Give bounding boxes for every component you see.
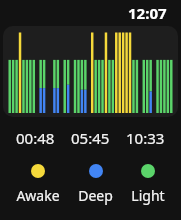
staticText: 00:48 bbox=[16, 128, 55, 148]
staticText: 05:45 bbox=[71, 128, 110, 148]
staticText: Awake bbox=[16, 186, 60, 205]
button[interactable]: Sleep stages chart bbox=[3, 26, 178, 117]
staticText: Deep bbox=[78, 186, 113, 205]
staticText: 10:33 bbox=[126, 128, 165, 148]
button[interactable]: Awake bbox=[14, 164, 62, 205]
button[interactable]: Deep bbox=[76, 164, 115, 205]
staticText: 12:07 bbox=[128, 3, 167, 23]
button[interactable]: Light bbox=[129, 164, 167, 205]
staticText: Light bbox=[131, 186, 165, 205]
